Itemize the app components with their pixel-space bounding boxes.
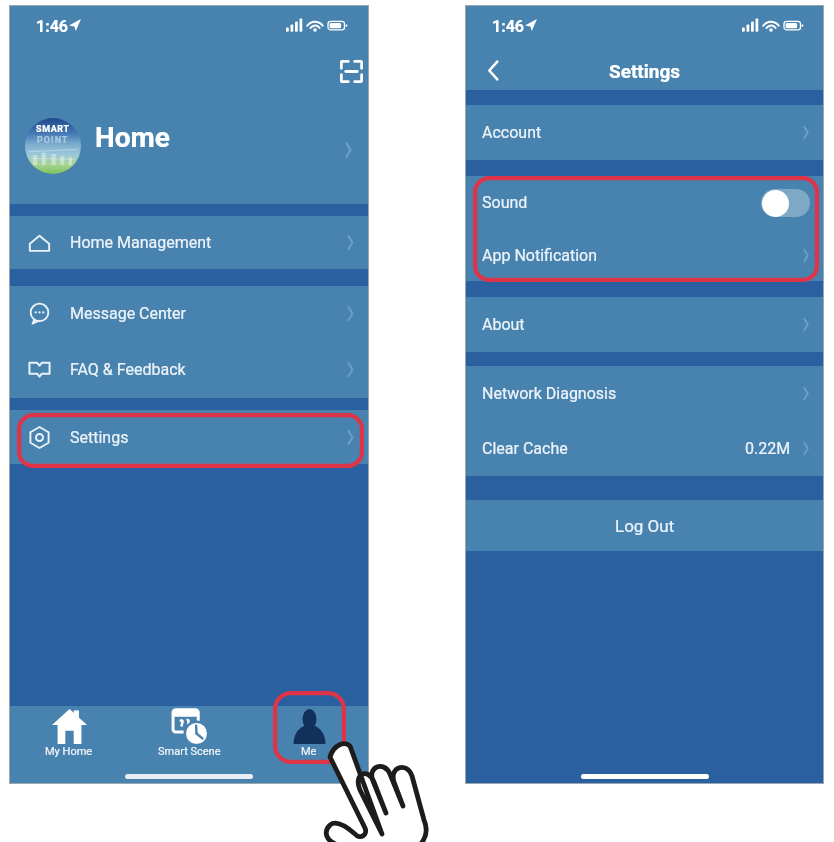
staticText: Message Center [70, 304, 186, 323]
staticText: Clear Cache [482, 439, 568, 458]
staticText: SMART [36, 124, 70, 135]
staticText: Sound [482, 193, 528, 212]
button[interactable]: Me [249, 706, 369, 762]
button[interactable]: Smart Scene [129, 706, 249, 762]
staticText: Home Management [70, 233, 212, 252]
button[interactable]: Scan QR code [331, 51, 371, 91]
staticText: App Notification [482, 246, 598, 265]
staticText: About [482, 315, 525, 334]
staticText: 1:46 [492, 17, 525, 36]
button[interactable]: Message Center [9, 286, 369, 340]
button[interactable]: FAQ & Feedback [9, 340, 369, 398]
staticText: POINT [37, 135, 69, 146]
staticText: Log Out [615, 516, 675, 536]
button[interactable]: Log Out [465, 500, 824, 551]
button[interactable]: Account [465, 105, 824, 160]
staticText: 0.22M [745, 439, 791, 458]
staticText: Home [95, 121, 170, 154]
button[interactable]: Sound [465, 176, 824, 229]
staticText: Smart Scene [158, 745, 221, 758]
staticText: Settings [70, 428, 129, 447]
button[interactable]: Clear Cache [465, 421, 824, 476]
button[interactable]: My Home [9, 706, 129, 762]
button[interactable]: Network Diagnosis [465, 366, 824, 421]
staticText: Me [301, 745, 317, 758]
staticText: My Home [45, 745, 93, 758]
staticText: 1:46 [36, 17, 69, 36]
button[interactable]: SMART [9, 100, 369, 200]
button[interactable]: App Notification [465, 229, 824, 281]
button[interactable]: Home Management [9, 216, 369, 269]
staticText: Account [482, 123, 542, 142]
button[interactable]: Back [473, 50, 513, 90]
staticText: Settings [465, 60, 824, 82]
staticText: Network Diagnosis [482, 384, 617, 403]
staticText: FAQ & Feedback [70, 360, 186, 379]
button[interactable]: Settings [9, 410, 369, 464]
button[interactable]: About [465, 297, 824, 352]
